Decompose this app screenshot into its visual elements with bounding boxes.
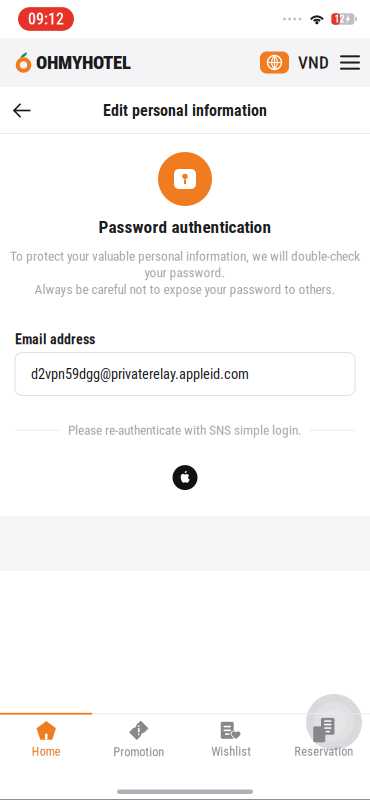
button[interactable]: Sign in with Apple: [172, 465, 197, 490]
button[interactable]: Back: [0, 89, 45, 132]
button[interactable]: Home: [0, 713, 92, 770]
staticText: Reservation: [294, 744, 353, 759]
staticText: Edit personal information: [103, 101, 267, 120]
staticText: Home: [32, 744, 61, 759]
button[interactable]: VND: [289, 44, 329, 81]
staticText: your password.: [144, 265, 225, 280]
staticText: Password authentication: [98, 217, 271, 237]
staticText: OHMYHOTEL: [36, 52, 131, 73]
staticText: VND: [298, 52, 329, 73]
button[interactable]: Promotion: [92, 713, 185, 770]
button[interactable]: Wishlist: [185, 713, 277, 770]
staticText: 12: [334, 13, 344, 25]
button[interactable]: Language: [260, 43, 289, 81]
staticText: d2vpn59dgg@privaterelay.appleid.com: [31, 366, 249, 382]
staticText: 09:12: [28, 10, 64, 28]
staticText: Always be careful not to expose your pas…: [34, 282, 335, 297]
staticText: Email address: [15, 331, 95, 348]
button[interactable]: OHMYHOTEL: [0, 44, 131, 81]
button[interactable]: Reservation: [277, 713, 370, 770]
button[interactable]: Menu: [329, 47, 370, 78]
staticText: Please re-authenticate with SNS simple l…: [68, 422, 302, 438]
staticText: To protect your valuable personal inform…: [10, 248, 360, 264]
staticText: Wishlist: [211, 744, 251, 759]
staticText: Promotion: [113, 745, 164, 759]
